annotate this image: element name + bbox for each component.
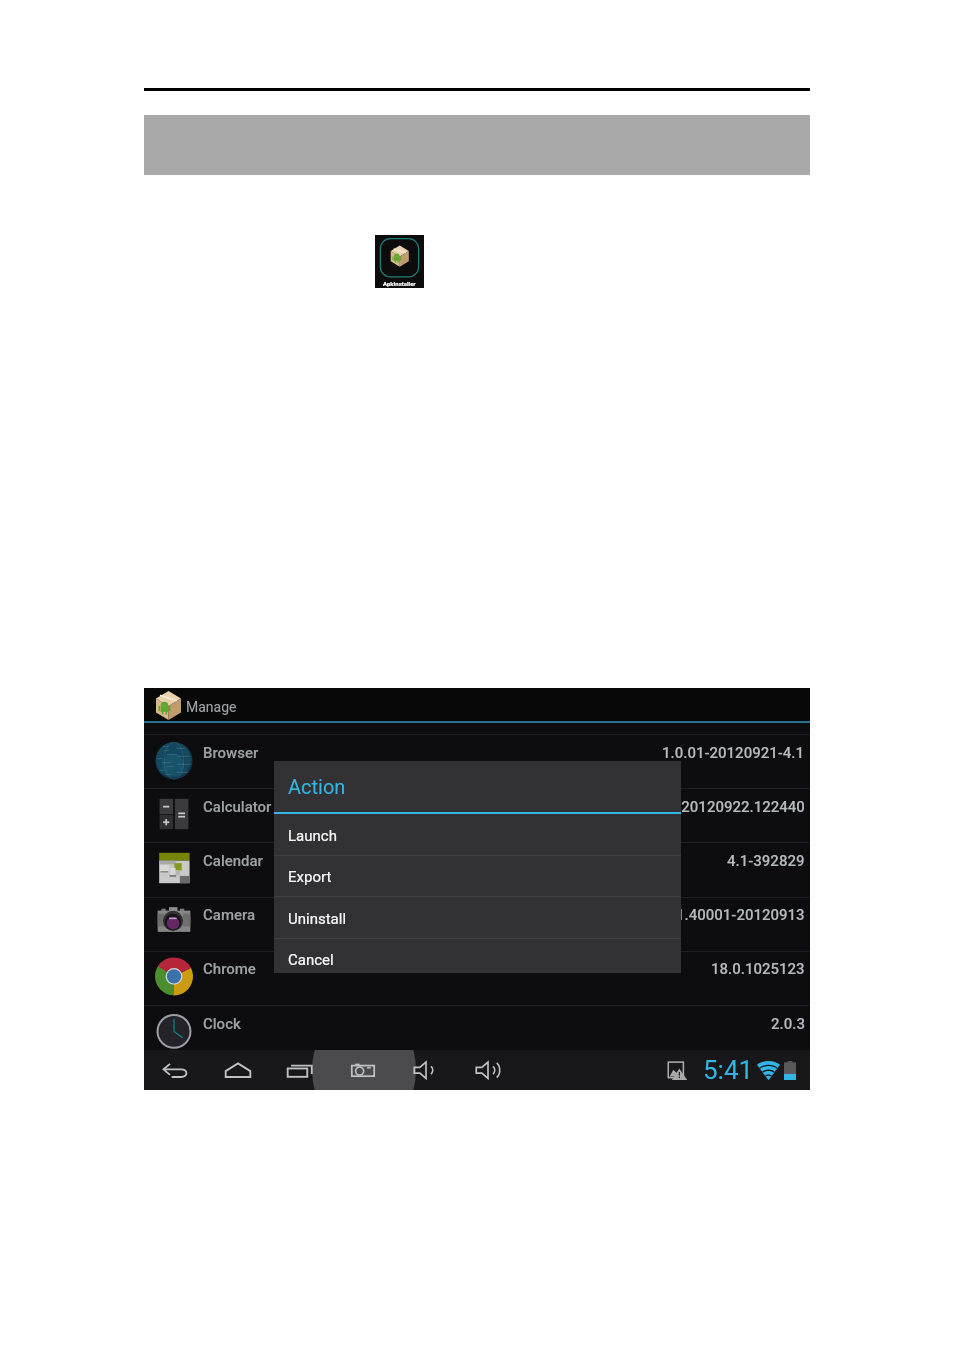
button[interactable]: Chrome bbox=[144, 951, 810, 1005]
staticText: Calendar bbox=[203, 852, 263, 870]
button[interactable]: Export bbox=[274, 855, 681, 896]
staticText: Clock bbox=[203, 1015, 241, 1033]
button[interactable]: Camera bbox=[144, 897, 810, 951]
staticText: Chrome bbox=[203, 960, 256, 978]
staticText: 4.1-20120922.122440 bbox=[655, 798, 805, 816]
staticText: ApkInstaller bbox=[383, 280, 416, 287]
button[interactable]: Calendar bbox=[144, 843, 810, 897]
staticText: 18.0.1025123 bbox=[711, 960, 805, 978]
button[interactable]: Calculator bbox=[144, 789, 810, 843]
button[interactable]: Cancel bbox=[274, 938, 681, 979]
staticText: Browser bbox=[203, 744, 259, 762]
staticText: Calculator bbox=[203, 798, 272, 816]
button[interactable]: Manage bbox=[144, 688, 324, 721]
staticText: Camera bbox=[203, 906, 256, 924]
staticText: Uninstall bbox=[288, 910, 347, 928]
staticText: 1.0.01-20120921-4.1 bbox=[662, 744, 805, 762]
button[interactable]: Status bbox=[660, 1050, 810, 1090]
button[interactable]: Volume up bbox=[457, 1050, 519, 1090]
staticText: 1.40001-20120913 bbox=[676, 906, 805, 924]
button[interactable]: Browser bbox=[144, 735, 810, 789]
staticText: Action bbox=[288, 775, 346, 798]
staticText: 2.0.3 bbox=[771, 1015, 805, 1033]
button[interactable]: Recent apps bbox=[269, 1050, 331, 1090]
button[interactable]: Home bbox=[207, 1050, 269, 1090]
staticText: 4.1-392829 bbox=[727, 852, 805, 870]
button[interactable]: Camera bbox=[332, 1050, 394, 1090]
staticText: Cancel bbox=[288, 951, 334, 969]
staticText: Launch bbox=[288, 827, 337, 845]
staticText: Export bbox=[288, 868, 332, 886]
button[interactable]: ApkInstaller app icon bbox=[375, 235, 424, 288]
button[interactable]: Clock bbox=[144, 1006, 810, 1060]
button[interactable]: Launch bbox=[274, 814, 681, 855]
button[interactable]: Volume down bbox=[395, 1050, 457, 1090]
staticText: Manage bbox=[186, 699, 237, 715]
staticText: 5:41 bbox=[703, 1055, 754, 1085]
button[interactable]: Back bbox=[144, 1050, 206, 1090]
button[interactable]: Uninstall bbox=[274, 897, 681, 938]
